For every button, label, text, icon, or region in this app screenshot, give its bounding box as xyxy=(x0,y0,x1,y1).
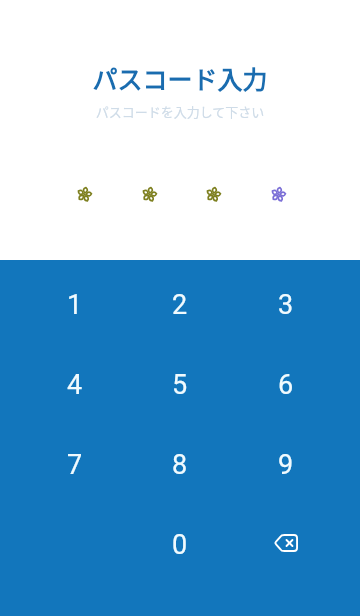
button[interactable]: 3 xyxy=(234,265,338,345)
staticText: 5 xyxy=(172,369,188,401)
button[interactable]: 2 xyxy=(128,265,232,345)
staticText: 8 xyxy=(172,449,188,481)
staticText: 3 xyxy=(278,289,294,321)
staticText: パスコード入力 xyxy=(0,60,360,96)
staticText: 1 xyxy=(67,289,83,321)
staticText: 2 xyxy=(172,289,188,321)
staticText: 7 xyxy=(67,449,83,481)
button[interactable]: 1 xyxy=(23,265,127,345)
staticText: パスコードを入力して下さい xyxy=(0,102,360,121)
button[interactable]: 4 xyxy=(23,345,127,425)
staticText: 6 xyxy=(278,369,294,401)
staticText: 9 xyxy=(278,449,294,481)
button[interactable]: 6 xyxy=(234,345,338,425)
button[interactable]: 7 xyxy=(23,425,127,505)
button[interactable]: 8 xyxy=(128,425,232,505)
button[interactable]: 0 xyxy=(128,505,232,585)
button[interactable]: Backspace xyxy=(234,505,338,585)
staticText: 4 xyxy=(67,369,83,401)
staticText: 0 xyxy=(172,529,188,561)
button[interactable]: 5 xyxy=(128,345,232,425)
button[interactable]: 9 xyxy=(234,425,338,505)
